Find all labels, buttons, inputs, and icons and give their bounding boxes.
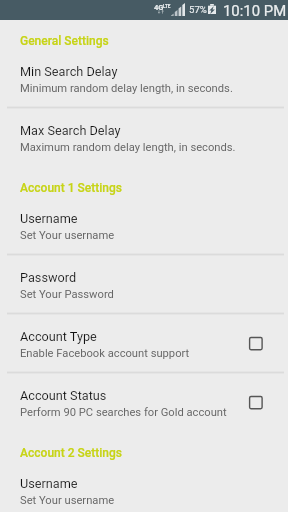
button[interactable]: Password [0, 255, 288, 314]
staticText: Username [20, 476, 78, 491]
staticText: Set Your username [20, 494, 115, 507]
other: 4G LTE network [154, 3, 164, 12]
button[interactable]: Username [0, 461, 288, 512]
button[interactable]: Account Type [0, 314, 288, 373]
staticText: Account 1 Settings [20, 181, 122, 195]
staticText: LTE [163, 4, 171, 9]
button[interactable]: Min Search Delay [0, 49, 288, 108]
staticText: 4G [154, 3, 164, 12]
staticText: Set Your username [20, 229, 115, 242]
staticText: Account Status [20, 388, 107, 403]
button[interactable]: Username [0, 196, 288, 255]
staticText: 10:10 PM [223, 2, 287, 19]
button[interactable]: Account Status checkbox [244, 391, 268, 415]
button[interactable]: Max Search Delay [0, 108, 288, 167]
other: Signal strength [171, 3, 185, 16]
staticText: Perform 90 PC searches for Gold account [20, 406, 227, 419]
staticText: Min Search Delay [20, 64, 118, 79]
staticText: Account 2 Settings [20, 446, 122, 460]
staticText: Enable Facebook account support [20, 347, 190, 360]
staticText: Set Your Password [20, 288, 114, 301]
button[interactable]: Account Type checkbox [244, 332, 268, 356]
staticText: Maximum random delay length, in seconds. [20, 141, 236, 154]
button[interactable]: Account Status [0, 373, 288, 432]
staticText: Max Search Delay [20, 123, 121, 138]
staticText: General Settings [20, 34, 109, 48]
staticText: Account Type [20, 329, 97, 344]
staticText: Username [20, 211, 78, 226]
other: Battery charging [208, 4, 216, 14]
staticText: Minimum random delay length, in seconds. [20, 82, 233, 95]
staticText: 57% [189, 4, 207, 15]
staticText: Password [20, 270, 77, 285]
